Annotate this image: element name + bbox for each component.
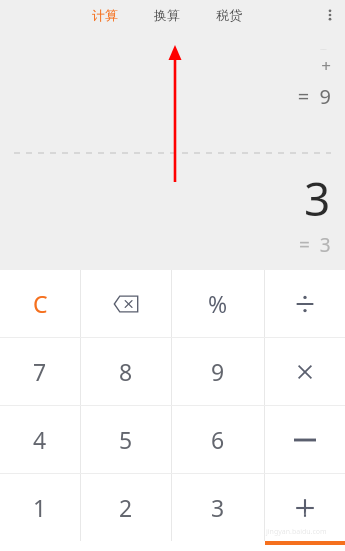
- staticText: 5: [119, 424, 133, 455]
- button[interactable]: 2: [81, 474, 171, 541]
- staticText: Baidu 经验: [254, 504, 339, 527]
- button[interactable]: Multiply: [265, 338, 345, 405]
- button[interactable]: Backspace: [81, 270, 171, 337]
- button[interactable]: 7: [0, 338, 80, 405]
- button[interactable]: 计算: [88, 4, 122, 26]
- button[interactable]: 4: [0, 406, 80, 473]
- staticText: 2: [119, 492, 133, 523]
- button[interactable]: 1: [0, 474, 80, 541]
- button[interactable]: Divide: [265, 270, 345, 337]
- button[interactable]: More options: [315, 0, 345, 30]
- button[interactable]: %: [172, 270, 264, 337]
- staticText: 7: [33, 356, 47, 387]
- staticText: +: [0, 54, 331, 77]
- staticText: 税贷: [216, 7, 242, 23]
- button[interactable]: Minus: [265, 406, 345, 473]
- staticText: 9: [211, 356, 225, 387]
- staticText: 计算: [92, 7, 118, 23]
- button[interactable]: 5: [81, 406, 171, 473]
- staticText: 3: [304, 167, 331, 230]
- button[interactable]: 税贷: [212, 4, 246, 26]
- staticText: C: [33, 288, 48, 319]
- button[interactable]: 8: [81, 338, 171, 405]
- staticText: 1: [33, 492, 47, 523]
- staticText: 4: [33, 424, 47, 455]
- button[interactable]: 6: [172, 406, 264, 473]
- button[interactable]: 3: [172, 474, 264, 541]
- staticText: 3: [211, 492, 225, 523]
- staticText: %: [208, 288, 228, 319]
- button[interactable]: Plus: [265, 474, 345, 541]
- button[interactable]: 9: [172, 338, 264, 405]
- button[interactable]: 换算: [150, 4, 184, 26]
- staticText: 换算: [154, 7, 180, 23]
- staticText: 8: [119, 356, 133, 387]
- staticText: jingyan.baidu.com: [266, 527, 327, 537]
- staticText: 6: [211, 424, 225, 455]
- button[interactable]: C: [0, 270, 80, 337]
- staticText: = 3: [299, 232, 331, 258]
- staticText: = 9: [0, 83, 331, 110]
